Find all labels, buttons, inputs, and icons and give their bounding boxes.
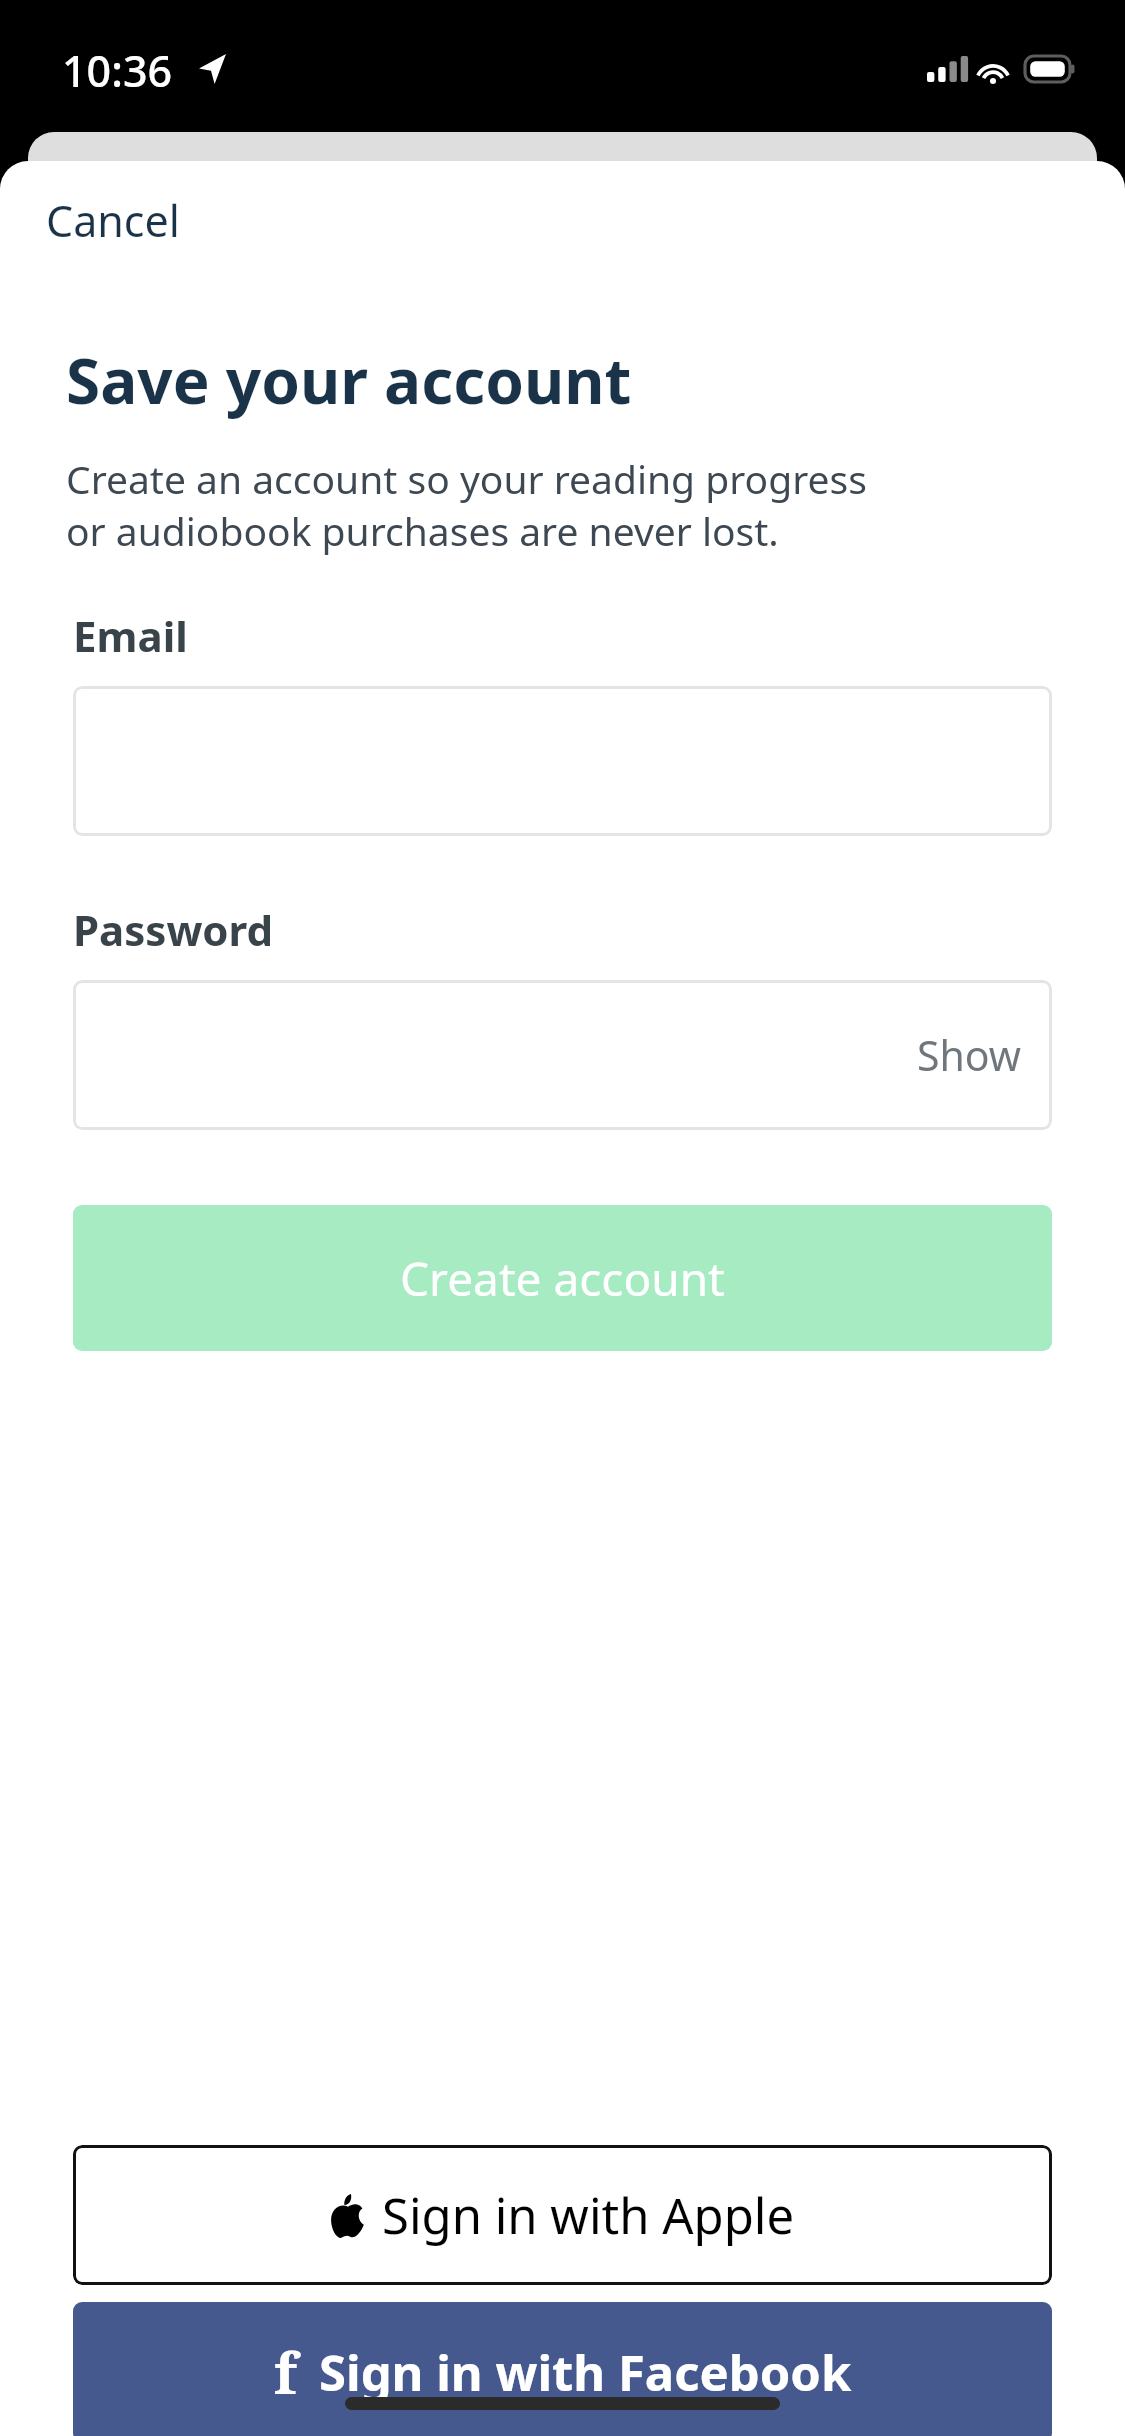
- staticText: Password: [73, 901, 274, 958]
- button[interactable]: f: [73, 2302, 1052, 2436]
- button[interactable]: Cancel: [26, 179, 200, 262]
- staticText: Show: [917, 1027, 1022, 1083]
- staticText: Save your account: [66, 338, 632, 422]
- button[interactable]: Sign in with Apple: [73, 2145, 1052, 2285]
- staticText: Create account: [400, 1247, 725, 1310]
- button[interactable]: Create account: [73, 1205, 1052, 1351]
- staticText: Sign in with Apple: [382, 2182, 795, 2249]
- staticText: 10:36: [62, 41, 173, 100]
- button[interactable]: Password field: [73, 980, 1052, 1130]
- staticText: Email: [73, 607, 188, 664]
- button[interactable]: Email field: [73, 686, 1052, 836]
- staticText: Sign in with Facebook: [319, 2339, 852, 2406]
- staticText: Create an account so your reading progre…: [66, 452, 867, 557]
- staticText: Cancel: [46, 191, 180, 250]
- staticText: f: [274, 2334, 297, 2410]
- button[interactable]: Show: [887, 1011, 1052, 1099]
